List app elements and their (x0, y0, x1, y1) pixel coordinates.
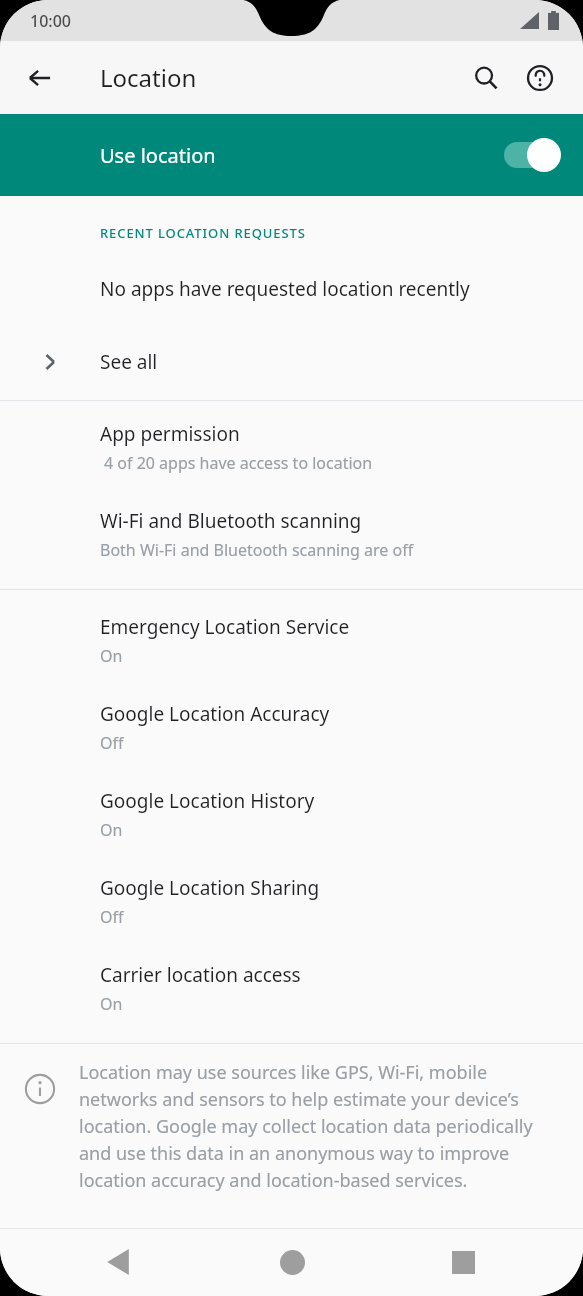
button[interactable]: Google Location History (0, 786, 583, 843)
staticText: Both Wi-Fi and Bluetooth scanning are of… (100, 539, 414, 561)
button[interactable]: Google Location Accuracy (0, 699, 583, 756)
staticText: Carrier location access (100, 962, 301, 988)
staticText: No apps have requested location recently (100, 276, 470, 302)
staticText: Off (100, 732, 124, 754)
staticText: Use location (100, 142, 499, 169)
button[interactable]: Carrier location access (0, 960, 583, 1017)
button[interactable]: Recent apps (439, 1238, 487, 1286)
staticText: On (100, 645, 123, 667)
button[interactable]: Back (94, 1238, 142, 1286)
staticText: Emergency Location Service (100, 614, 350, 640)
staticText: Google Location Accuracy (100, 701, 330, 727)
staticText: Location (100, 61, 197, 94)
staticText: Google Location Sharing (100, 875, 320, 901)
button[interactable]: App permission (0, 419, 583, 476)
staticText: See all (100, 349, 158, 375)
button[interactable]: Google Location Sharing (0, 873, 583, 930)
staticText: On (100, 993, 123, 1015)
staticText: 4 of 20 apps have access to location (104, 452, 373, 474)
button[interactable]: Search (459, 51, 513, 105)
staticText: 10:00 (30, 10, 71, 32)
button[interactable]: Wi-Fi and Bluetooth scanning (0, 506, 583, 563)
staticText: Wi-Fi and Bluetooth scanning (100, 508, 362, 534)
button[interactable]: See all (0, 334, 583, 390)
button[interactable]: Use location (0, 114, 583, 196)
staticText: On (100, 819, 123, 841)
staticText: Location may use sources like GPS, Wi-Fi… (79, 1060, 555, 1192)
staticText: RECENT LOCATION REQUESTS (100, 224, 306, 242)
button[interactable]: Emergency Location Service (0, 612, 583, 669)
button[interactable]: Back (14, 52, 66, 104)
button[interactable]: Home (268, 1238, 316, 1286)
staticText: Google Location History (100, 788, 315, 814)
button[interactable]: Help (513, 51, 567, 105)
staticText: Off (100, 906, 124, 928)
staticText: App permission (100, 421, 240, 447)
